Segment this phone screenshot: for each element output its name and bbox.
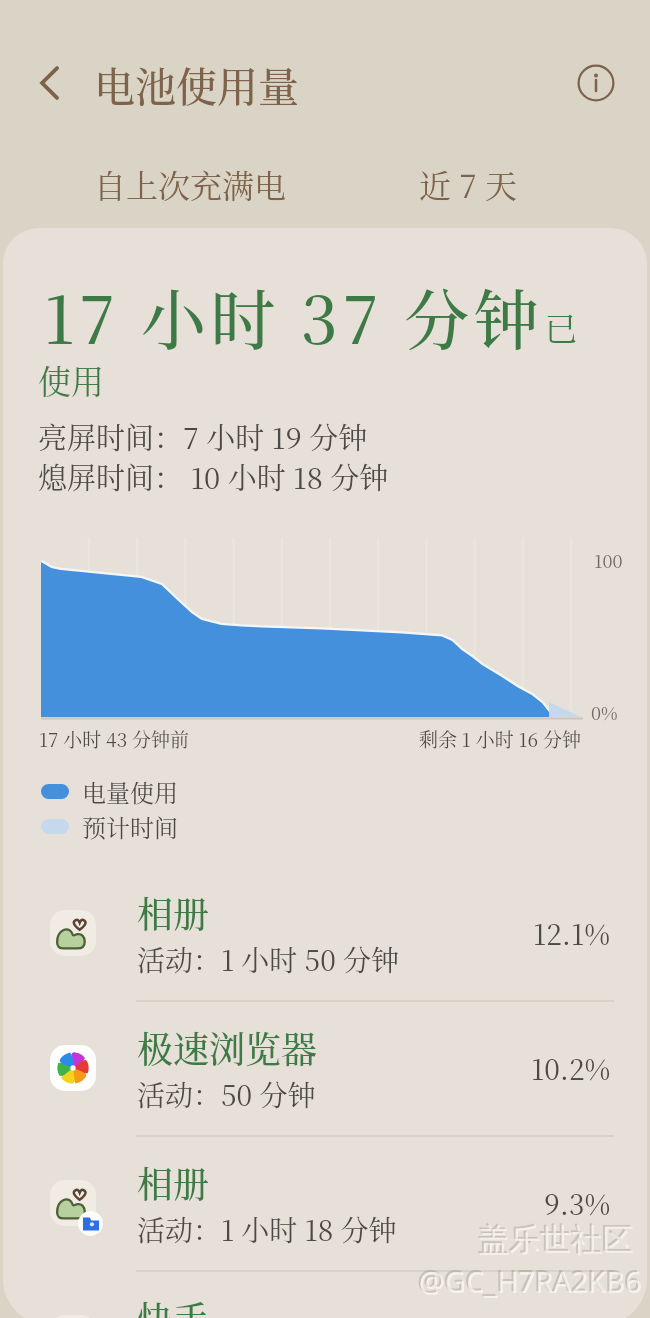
staticText: 电池使用量 <box>94 55 299 114</box>
button[interactable]: 相册 <box>3 865 647 1000</box>
staticText: 极速浏览器 <box>137 1022 318 1074</box>
staticText: @GC_H7RA2KB6 <box>417 1260 641 1299</box>
staticText: 9.3% <box>544 1183 611 1223</box>
staticText: 12.1% <box>533 913 611 953</box>
staticText: 使用 <box>38 356 104 403</box>
staticText: 17 小时 37 分钟 <box>44 269 544 362</box>
staticText: 剩余 1 小时 16 分钟 <box>419 725 581 752</box>
button[interactable]: 相册 <box>3 1135 647 1270</box>
staticText: 相册 <box>137 1157 210 1209</box>
button[interactable]: Info <box>566 53 626 113</box>
staticText: 电量使用 <box>82 774 178 808</box>
staticText: 盖乐世社区 <box>477 1219 632 1258</box>
staticText: 100 <box>594 547 623 573</box>
staticText: 0% <box>591 699 618 725</box>
staticText: 熄屏时间： 10 小时 18 分钟 <box>38 456 389 498</box>
staticText: 亮屏时间：7 小时 19 分钟 <box>38 416 368 458</box>
button[interactable]: 快手 <box>3 1270 647 1318</box>
staticText: 已 <box>536 303 578 350</box>
button[interactable]: 极速浏览器 <box>3 1000 647 1135</box>
staticText: @GC_H7RA2KB6 <box>419 1262 643 1301</box>
staticText: 活动：50 分钟 <box>137 1074 316 1114</box>
staticText: 预计时间 <box>82 809 178 843</box>
staticText: 17 小时 43 分钟前 <box>39 725 190 752</box>
staticText: 活动：1 小时 50 分钟 <box>137 939 399 979</box>
button[interactable]: 近 7 天 <box>390 156 545 212</box>
staticText: 盖乐世社区 <box>479 1221 634 1260</box>
button[interactable]: 自上次充满电 <box>70 156 310 212</box>
staticText: 自上次充满电 <box>94 161 287 207</box>
staticText: 近 7 天 <box>419 161 517 207</box>
staticText: 10.2% <box>531 1048 611 1088</box>
staticText: 快手 <box>137 1292 210 1318</box>
staticText: 活动：1 小时 18 分钟 <box>137 1209 397 1249</box>
button[interactable]: Back <box>20 53 80 113</box>
staticText: 相册 <box>137 887 210 939</box>
